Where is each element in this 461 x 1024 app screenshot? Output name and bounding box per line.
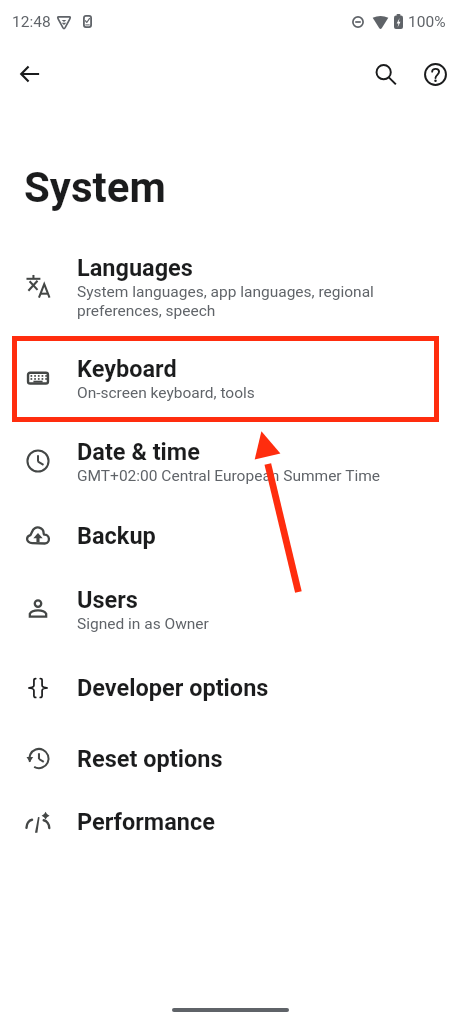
button[interactable]: Date & time — [0, 427, 461, 495]
button[interactable]: Languages — [0, 243, 461, 329]
staticText: Backup — [77, 522, 156, 550]
staticText: 12:48 — [12, 13, 51, 31]
staticText: Performance — [77, 808, 215, 836]
staticText: Signed in as Owner — [77, 615, 209, 633]
staticText: Users — [77, 586, 138, 614]
button[interactable]: Users — [0, 575, 461, 643]
staticText: System languages, app languages, regiona… — [77, 283, 374, 319]
staticText: Languages — [77, 254, 193, 282]
button[interactable]: Backup — [0, 508, 461, 564]
button[interactable]: Help — [411, 50, 459, 98]
staticText: GMT+02:00 Central European Summer Time — [77, 467, 380, 485]
staticText: Developer options — [77, 674, 269, 702]
staticText: Date & time — [77, 438, 200, 466]
staticText: 100% — [408, 13, 446, 31]
staticText: On-screen keyboard, tools — [77, 384, 255, 402]
staticText: Keyboard — [77, 355, 177, 383]
button[interactable]: Developer options — [0, 660, 461, 716]
button[interactable]: Search — [361, 50, 409, 98]
button[interactable]: Keyboard — [0, 344, 461, 412]
button[interactable]: Reset options — [0, 731, 461, 787]
button[interactable]: Performance — [0, 794, 461, 850]
staticText: Reset options — [77, 745, 223, 773]
staticText: System — [24, 163, 166, 212]
button[interactable]: Back — [6, 50, 54, 98]
